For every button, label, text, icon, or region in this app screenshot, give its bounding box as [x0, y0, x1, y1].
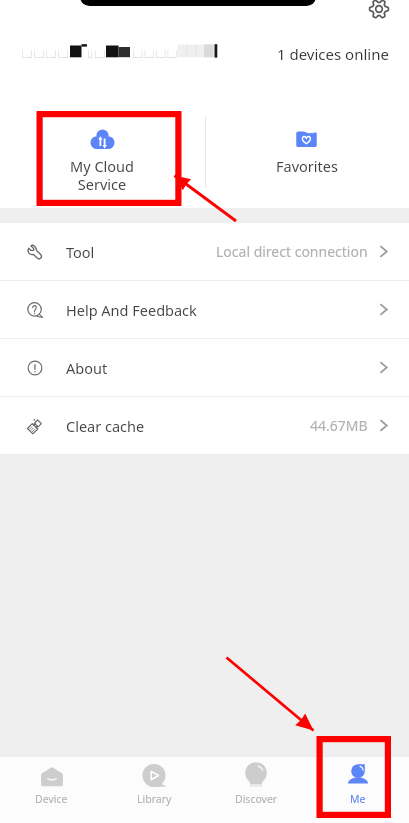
staticText: About [66, 358, 108, 378]
staticText: Favorites [276, 156, 338, 176]
staticText: Help And Feedback [66, 300, 197, 320]
staticText: 44.67MB [310, 416, 368, 435]
button[interactable]: Device [0, 757, 103, 806]
button[interactable]: Clear cache [0, 397, 409, 454]
button[interactable]: My Cloud Service [0, 105, 204, 193]
button[interactable]: Tool [0, 223, 409, 280]
staticText: Tool [66, 242, 95, 262]
button[interactable]: Me [307, 757, 409, 806]
button[interactable]: Help And Feedback [0, 281, 409, 338]
button[interactable]: Discover [205, 757, 307, 806]
button[interactable]: About [0, 339, 409, 396]
staticText: Me [350, 792, 366, 806]
button[interactable]: Library [103, 757, 205, 806]
staticText: Clear cache [66, 416, 145, 436]
staticText: Device [35, 792, 68, 806]
staticText: My Cloud Service [70, 156, 134, 193]
staticText: 1 devices online [277, 44, 389, 60]
button[interactable]: Settings [360, 0, 397, 27]
staticText: Local direct connection [216, 242, 368, 261]
staticText: Discover [235, 792, 278, 806]
staticText: Library [137, 792, 172, 806]
button[interactable]: Favorites [204, 105, 409, 176]
